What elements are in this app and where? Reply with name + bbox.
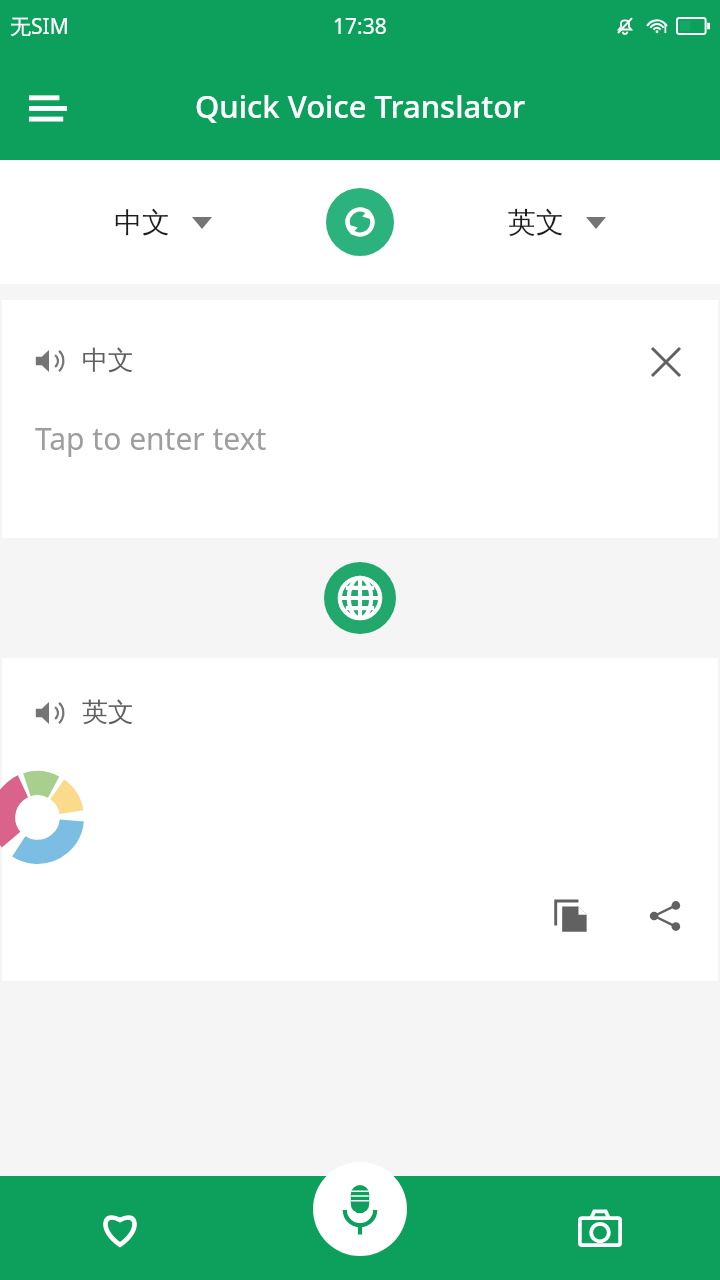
staticText: Tap to enter text: [35, 418, 267, 459]
staticText: 中文: [82, 344, 134, 377]
staticText: 英文: [508, 205, 564, 240]
staticText: 无SIM: [10, 12, 69, 41]
button[interactable]: Camera translate: [480, 1176, 720, 1280]
staticText: 英文: [82, 696, 134, 729]
button[interactable]: Swap languages: [326, 188, 394, 256]
button[interactable]: Favorites: [0, 1176, 240, 1280]
button[interactable]: Menu: [16, 74, 80, 138]
staticText: 17:38: [333, 12, 387, 41]
button[interactable]: Record voice: [313, 1162, 407, 1256]
button[interactable]: Clear: [640, 336, 692, 388]
button[interactable]: 中文: [2, 300, 718, 538]
staticText: 中文: [114, 205, 170, 240]
staticText: Quick Voice Translator: [195, 85, 526, 127]
button[interactable]: Share: [636, 887, 694, 945]
button[interactable]: Translate: [324, 562, 396, 634]
button[interactable]: Copy: [542, 887, 600, 945]
button[interactable]: Voice input: [240, 1176, 480, 1280]
button[interactable]: 英文: [494, 195, 620, 250]
button[interactable]: 中文: [100, 195, 226, 250]
